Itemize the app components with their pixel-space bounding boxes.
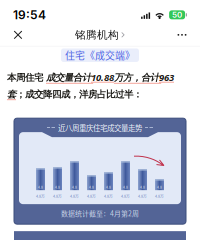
button[interactable]: More [167, 24, 197, 46]
staticText: 本周住宅 成交量合计10.88万方，合计963 [7, 71, 174, 84]
button[interactable]: 铭腾机构 [75, 28, 125, 41]
staticText: 4.8 [106, 185, 111, 190]
staticText: 4.8万 [155, 193, 164, 199]
staticText: 数据统计截至：4月第2周 [61, 208, 139, 218]
staticText: 4.8 [55, 185, 60, 190]
staticText: 4.8万 [36, 193, 45, 199]
staticText: 4.8 [140, 185, 145, 190]
staticText: 4.8 [123, 185, 128, 190]
staticText: 19:54 [13, 8, 46, 22]
staticText: 4.8万 [87, 193, 96, 199]
staticText: 50 [172, 10, 182, 20]
staticText: 4.8 [38, 185, 43, 190]
staticText: 4.8 [72, 185, 77, 190]
staticText: 4.8万 [53, 193, 62, 199]
staticText: 4.8万 [121, 193, 130, 199]
staticText: 近八周重庆住宅成交量走势 [58, 122, 142, 133]
staticText: 套；成交降四成，洋房占比过半： [7, 88, 142, 100]
button[interactable]: Close [3, 24, 33, 46]
staticText: 4.8 [157, 185, 162, 190]
staticText: 4.8万 [70, 193, 79, 199]
staticText: 住宅《成交端》 [65, 48, 135, 62]
staticText: 铭腾机构 [75, 28, 119, 41]
staticText: 4.8万 [138, 193, 147, 199]
staticText: 4.8 [89, 185, 94, 190]
staticText: 4.8万 [104, 193, 113, 199]
button[interactable]: 住宅《成交端》 [61, 48, 139, 62]
